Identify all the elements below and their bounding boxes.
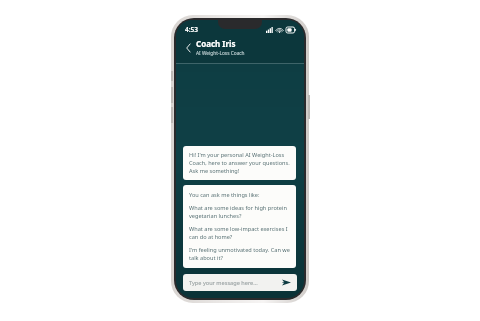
staticText: 4:53 <box>185 25 198 34</box>
button[interactable]: Hi! I'm your personal AI Weight-Loss Coa… <box>183 146 296 180</box>
button[interactable]: Back <box>182 42 194 54</box>
staticText: Type your message here... <box>189 279 281 287</box>
button[interactable]: Send <box>281 277 292 288</box>
button[interactable]: Type your message here... <box>183 274 297 291</box>
staticText: What are some ideas for high protein veg… <box>189 204 290 220</box>
staticText: What are some low-impact exercises I can… <box>189 225 290 241</box>
button[interactable]: You can ask me things like: <box>183 185 296 268</box>
staticText: Coach Iris <box>196 38 236 49</box>
staticText: You can ask me things like: <box>189 191 260 199</box>
staticText: AI Weight-Loss Coach <box>196 50 245 57</box>
staticText: I'm feeling unmotivated today. Can we ta… <box>189 246 290 262</box>
staticText: Hi! I'm your personal AI Weight-Loss Coa… <box>189 151 290 175</box>
